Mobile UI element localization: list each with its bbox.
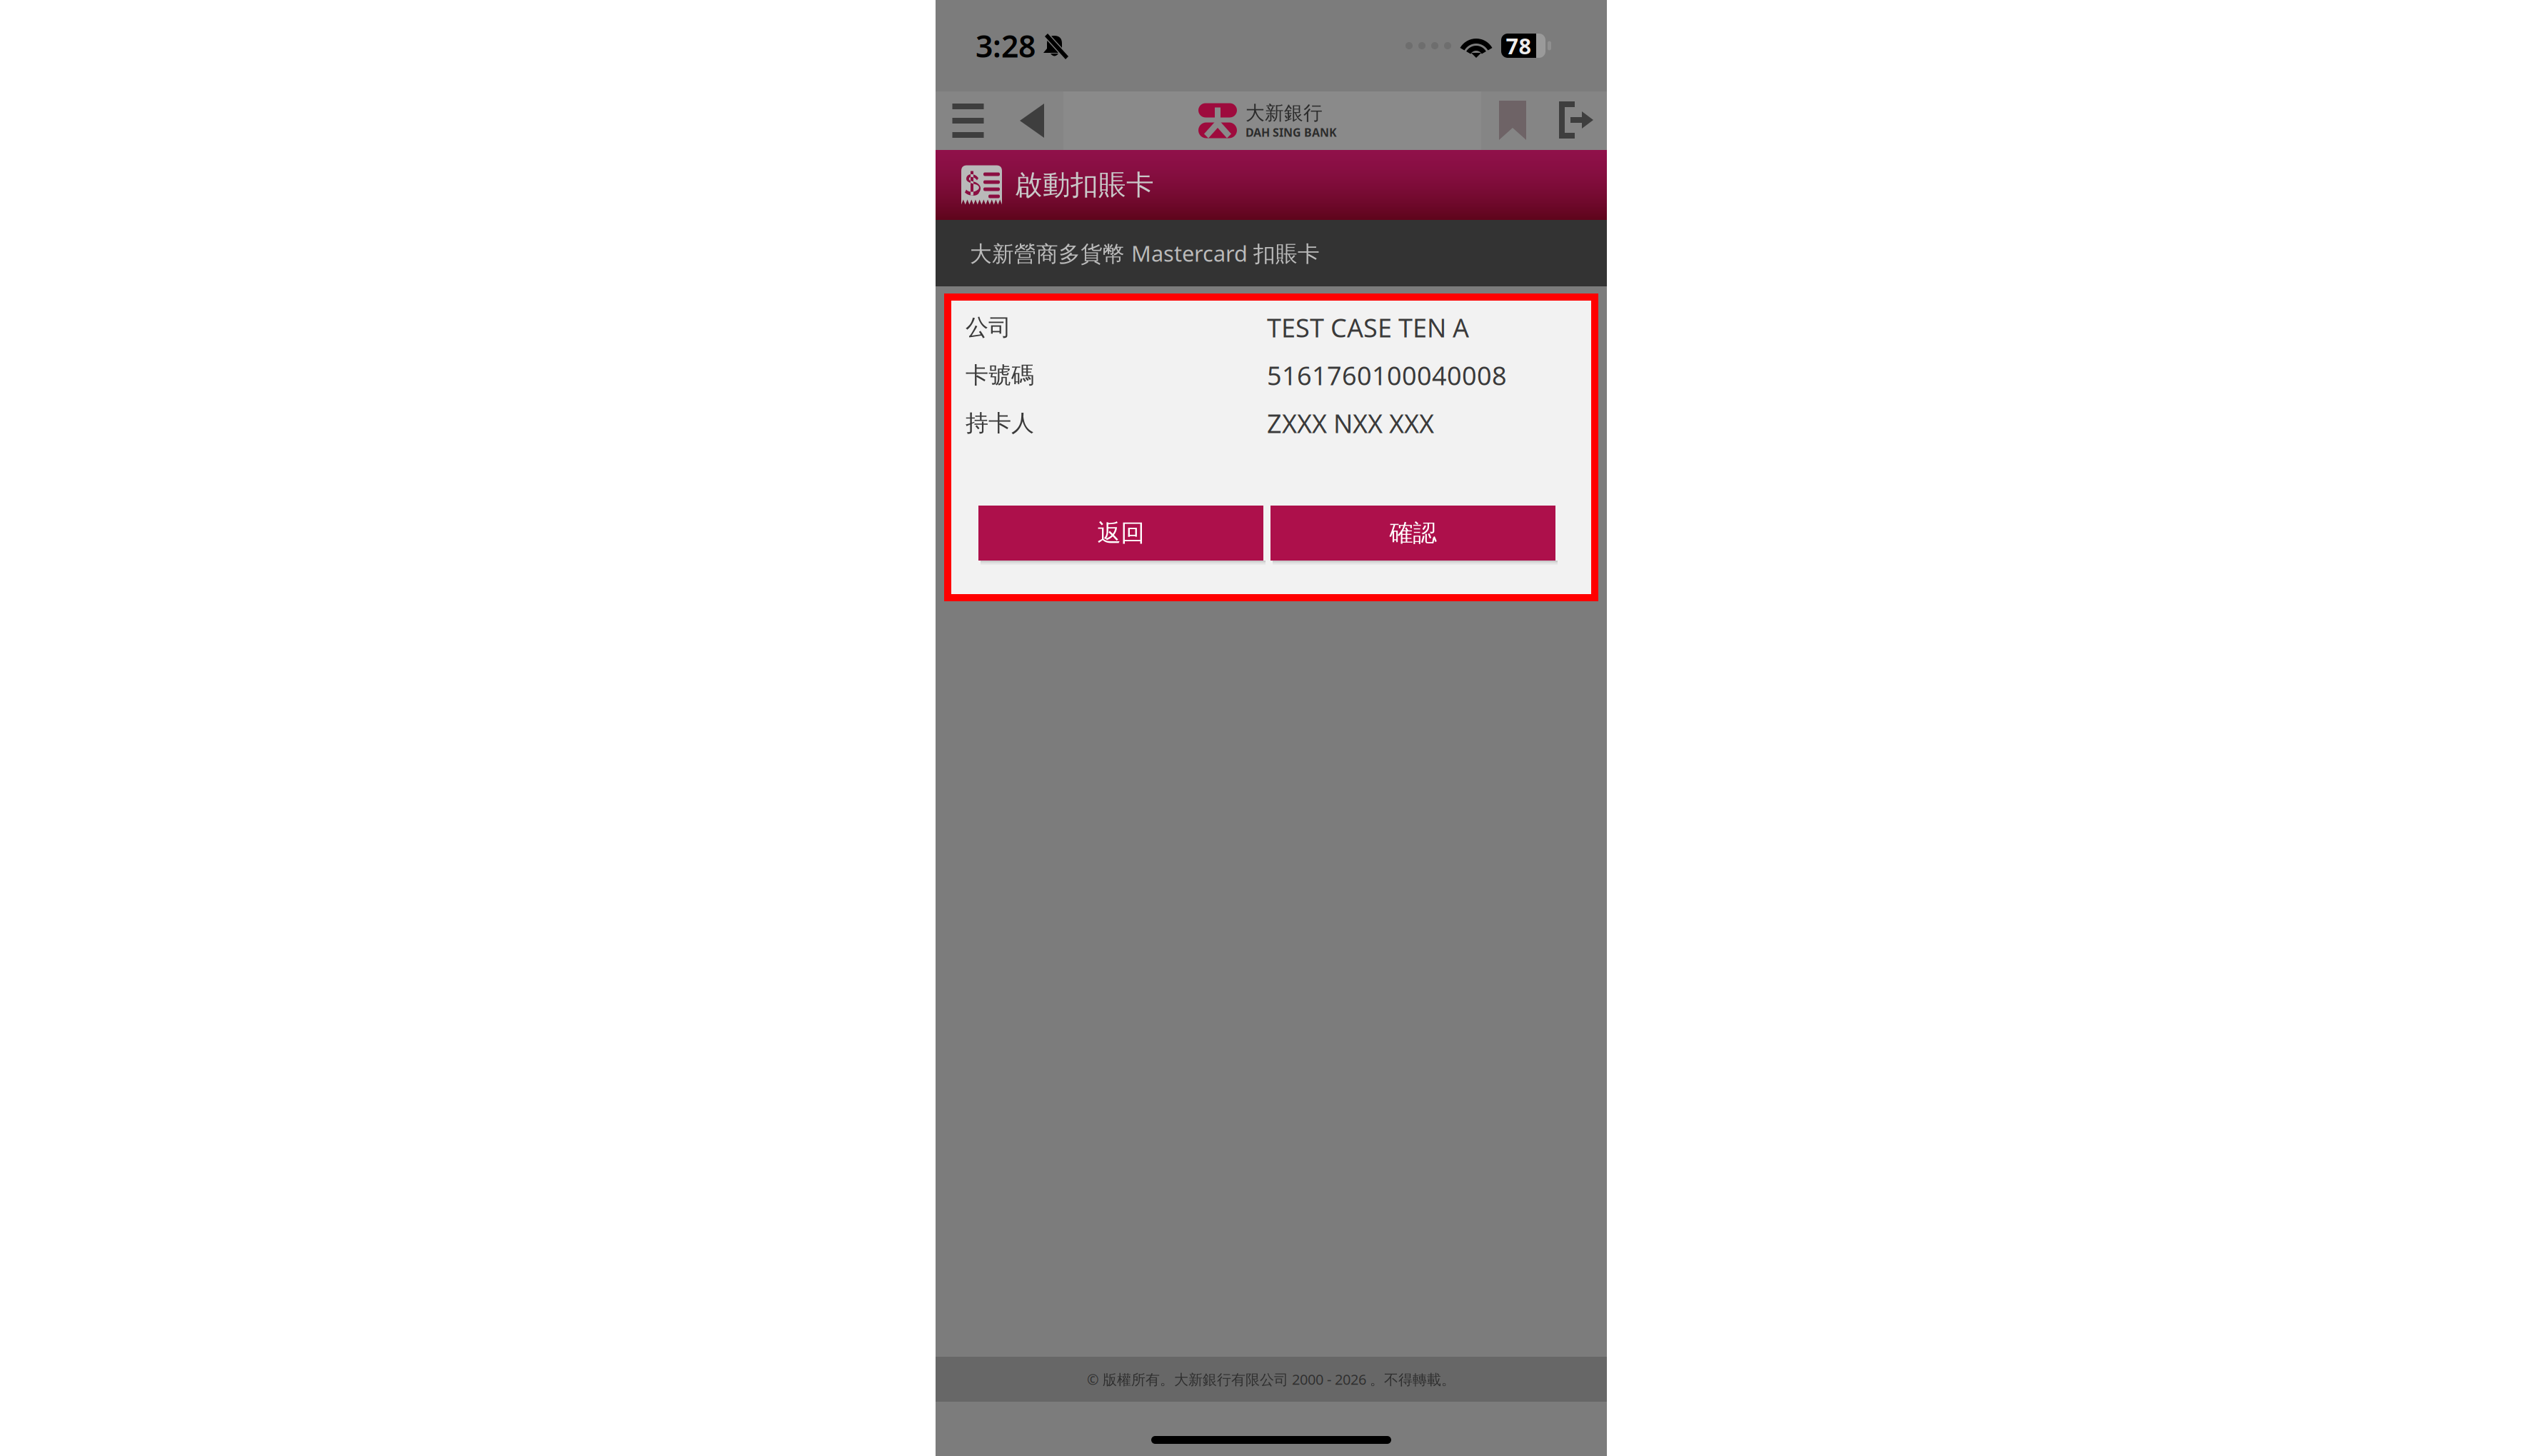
staticText: DAH SING BANK (1246, 125, 1337, 140)
staticText: 5161760100040008 (1267, 358, 1507, 392)
button[interactable]: Log out (1544, 91, 1607, 150)
staticText: TEST CASE TEN A (1267, 310, 1469, 344)
staticText: 持卡人 (966, 409, 1034, 437)
button[interactable]: 返回 (978, 506, 1263, 561)
button[interactable]: Menu (936, 91, 1001, 150)
button[interactable]: Back (1001, 91, 1063, 150)
staticText: 啟動扣賬卡 (1015, 168, 1154, 202)
staticText: 3:28 (976, 25, 1036, 66)
staticText: © 版權所有。大新銀行有限公司 2000 - 2026 。不得轉載。 (1087, 1370, 1455, 1389)
button[interactable]: 確認 (1271, 506, 1555, 561)
button[interactable]: Bookmark (1481, 91, 1544, 150)
staticText: ZXXX NXX XXX (1267, 406, 1434, 440)
staticText: 卡號碼 (966, 361, 1034, 389)
staticText: 78 (1506, 31, 1532, 60)
staticText: 大新營商多貨幣 Mastercard 扣賬卡 (970, 239, 1320, 268)
staticText: 返回 (1097, 518, 1144, 548)
staticText: 大新銀行 (1246, 101, 1323, 125)
staticText: 公司 (966, 313, 1011, 341)
staticText: 確認 (1389, 518, 1437, 548)
